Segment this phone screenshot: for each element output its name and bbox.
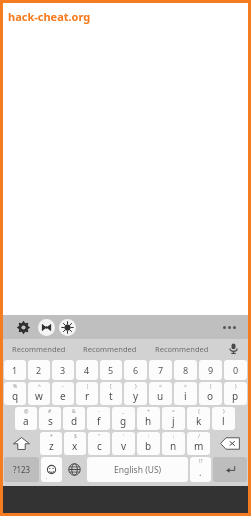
staticText: 1 [12, 364, 18, 376]
staticText: & [72, 408, 76, 415]
button[interactable]: Settings [13, 317, 33, 337]
button[interactable]: < [149, 382, 172, 405]
button[interactable]: ; [162, 432, 185, 455]
button[interactable]: Shift [3, 431, 39, 456]
staticText: ' [123, 433, 125, 440]
button[interactable]: * [40, 432, 62, 455]
staticText: y [133, 389, 139, 403]
button[interactable]: Recommended [74, 339, 146, 358]
staticText: English (US) [114, 464, 162, 476]
staticText: e [60, 389, 66, 403]
staticText: % [13, 383, 18, 390]
button[interactable]: } [212, 407, 235, 430]
button[interactable]: # [39, 407, 61, 430]
button[interactable]: | [76, 382, 98, 405]
staticText: > [184, 383, 187, 390]
button[interactable]: + [137, 407, 160, 430]
button[interactable]: : [137, 432, 160, 455]
button[interactable]: Change language [63, 456, 86, 483]
staticText: g [120, 414, 127, 428]
button[interactable]: - [87, 407, 110, 430]
staticText: = [172, 408, 175, 415]
staticText: + [147, 408, 150, 415]
button[interactable]: 8 [174, 360, 197, 380]
button[interactable]: / [187, 432, 210, 455]
staticText: 9 [208, 364, 214, 376]
staticText: 4 [84, 364, 90, 376]
staticText: l [222, 414, 225, 428]
staticText: Recommended [155, 344, 209, 354]
staticText: - [62, 383, 64, 390]
staticText: ( [210, 383, 212, 390]
button[interactable]: Recommended [146, 339, 218, 358]
button[interactable]: 6 [124, 360, 147, 380]
button[interactable]: ) [224, 382, 247, 405]
staticText: r [85, 389, 90, 403]
staticText: f [97, 414, 101, 428]
button[interactable]: English (US) [87, 457, 188, 482]
staticText: u [157, 389, 164, 403]
button[interactable]: Recommended [3, 339, 74, 358]
staticText: a [23, 414, 29, 428]
button[interactable]: > [174, 382, 197, 405]
button[interactable]: ?123 [4, 457, 39, 482]
staticText: , [46, 474, 48, 481]
staticText: _ [122, 408, 125, 415]
staticText: p [232, 389, 239, 403]
staticText: | [86, 383, 89, 390]
button[interactable]: ( [199, 382, 222, 405]
button[interactable]: Voice input [218, 339, 248, 358]
button[interactable]: = [162, 407, 185, 430]
staticText: s [48, 414, 53, 428]
button[interactable]: ' [112, 432, 135, 455]
button[interactable]: Clipboard [38, 319, 55, 336]
button[interactable]: 1 [4, 360, 26, 380]
staticText: ?123 [13, 464, 31, 475]
button[interactable]: Backspace [211, 431, 248, 456]
button[interactable]: Stickers [59, 319, 76, 336]
staticText: i [184, 389, 187, 403]
button[interactable]: $ [64, 432, 86, 455]
staticText: Recommended [12, 344, 66, 354]
button[interactable]: 5 [100, 360, 122, 380]
staticText: < [159, 383, 162, 390]
button[interactable]: Enter [213, 457, 247, 482]
button[interactable]: !? [190, 457, 211, 482]
button[interactable]: - [52, 382, 74, 405]
staticText: $ [74, 433, 77, 440]
staticText: j [172, 414, 175, 428]
staticText: } [223, 408, 225, 415]
button[interactable]: 2 [28, 360, 50, 380]
button[interactable]: 7 [149, 360, 172, 380]
staticText: * [50, 433, 53, 440]
staticText: o [207, 389, 214, 403]
button[interactable]: Emoji [41, 457, 62, 482]
button[interactable]: { [187, 407, 210, 430]
button[interactable]: } [124, 382, 147, 405]
button[interactable]: " [88, 432, 110, 455]
staticText: v [121, 439, 127, 453]
staticText: m [194, 439, 204, 453]
staticText: !? [199, 458, 203, 465]
staticText: hack-cheat.org [8, 9, 91, 24]
staticText: 8 [183, 364, 189, 376]
staticText: : [148, 433, 150, 440]
button[interactable]: % [4, 382, 26, 405]
staticText: # [48, 408, 52, 415]
button[interactable]: 0 [224, 360, 247, 380]
button[interactable]: & [63, 407, 85, 430]
button[interactable]: 4 [76, 360, 98, 380]
staticText: 3 [60, 364, 66, 376]
button[interactable]: ^ [28, 382, 50, 405]
button[interactable]: @ [15, 407, 37, 430]
staticText: z [49, 439, 54, 453]
staticText: . [199, 466, 202, 478]
button[interactable]: 3 [52, 360, 74, 380]
button[interactable]: _ [112, 407, 135, 430]
button[interactable]: 9 [199, 360, 222, 380]
button[interactable]: More options [219, 317, 239, 337]
staticText: [ [110, 383, 112, 390]
staticText: n [170, 439, 177, 453]
button[interactable]: [ [100, 382, 122, 405]
staticText: " [98, 433, 101, 440]
